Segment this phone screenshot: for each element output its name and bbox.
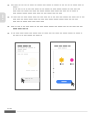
button[interactable]: Document page [0,0,90,120]
